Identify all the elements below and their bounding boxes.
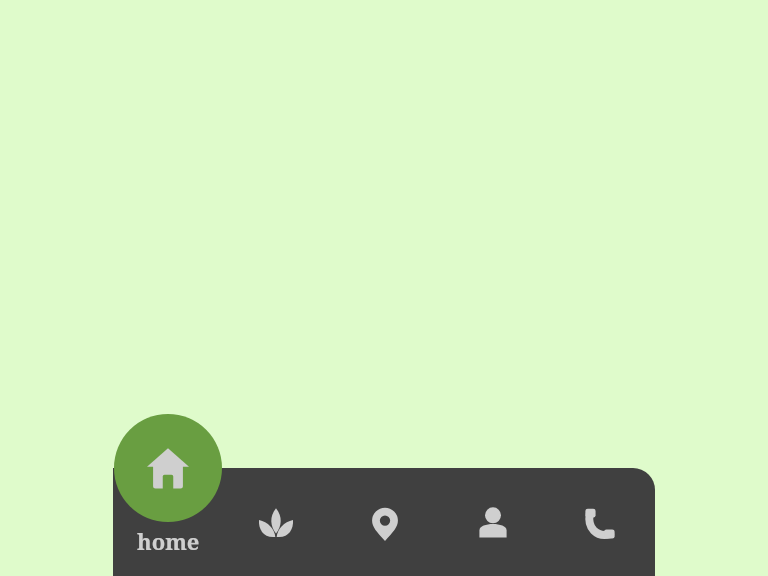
- button[interactable]: Home: [114, 414, 222, 522]
- button[interactable]: Call: [564, 488, 636, 560]
- button[interactable]: Location: [349, 488, 421, 560]
- button[interactable]: Spa: [240, 488, 312, 560]
- staticText: home: [137, 526, 200, 556]
- button[interactable]: Profile: [457, 488, 529, 560]
- button[interactable]: home: [113, 468, 223, 576]
